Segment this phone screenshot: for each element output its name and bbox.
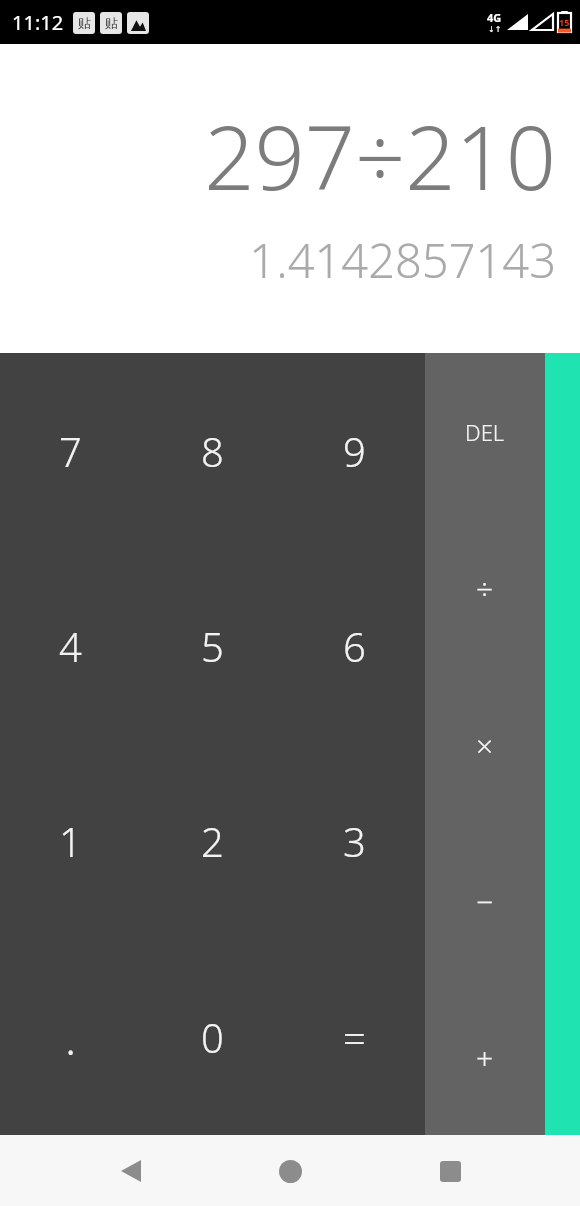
button[interactable]: × <box>425 667 545 823</box>
staticText: ÷ <box>476 568 494 609</box>
button[interactable]: 4 <box>0 548 141 743</box>
button[interactable]: + <box>425 979 545 1135</box>
button[interactable]: 2 <box>141 743 283 939</box>
staticText: 贴 <box>105 15 118 31</box>
button[interactable]: 9 <box>283 353 425 548</box>
button[interactable]: Recent apps <box>424 1145 476 1197</box>
staticText: 2 <box>201 814 224 868</box>
staticText: + <box>476 1037 494 1078</box>
staticText: DEL <box>465 417 505 447</box>
button[interactable]: ÷ <box>425 510 545 667</box>
staticText: × <box>476 725 494 766</box>
staticText: 贴 <box>78 15 91 31</box>
staticText: 1.4142857143 <box>249 228 556 292</box>
staticText: 15 <box>559 16 570 28</box>
staticText: 0 <box>201 1010 224 1064</box>
staticText: . <box>65 1006 77 1069</box>
staticText: 6 <box>343 619 366 673</box>
button[interactable]: Home <box>264 1145 316 1197</box>
button[interactable]: 1 <box>0 743 141 939</box>
staticText: 5 <box>201 619 224 673</box>
staticText: = <box>343 1010 366 1064</box>
staticText: 8 <box>201 424 224 478</box>
button[interactable]: 3 <box>283 743 425 939</box>
button[interactable]: 6 <box>283 548 425 743</box>
staticText: 11:12 <box>12 9 64 36</box>
button[interactable]: 5 <box>141 548 283 743</box>
staticText: 7 <box>59 424 82 478</box>
staticText: 4 <box>59 619 82 673</box>
button[interactable]: − <box>425 823 545 979</box>
button[interactable]: 8 <box>141 353 283 548</box>
staticText: ↓↑ <box>488 25 502 34</box>
staticText: − <box>476 881 494 922</box>
button[interactable]: 7 <box>0 353 141 548</box>
button[interactable]: = <box>283 939 425 1135</box>
staticText: 3 <box>343 814 366 868</box>
staticText: 297÷210 <box>204 96 556 216</box>
button[interactable]: 0 <box>141 939 283 1135</box>
staticText: 1 <box>59 814 82 868</box>
button[interactable]: DEL <box>425 353 545 510</box>
staticText: 4G <box>487 10 502 25</box>
button[interactable]: . <box>0 939 141 1135</box>
button[interactable]: Back <box>105 1145 157 1197</box>
staticText: 9 <box>343 424 366 478</box>
